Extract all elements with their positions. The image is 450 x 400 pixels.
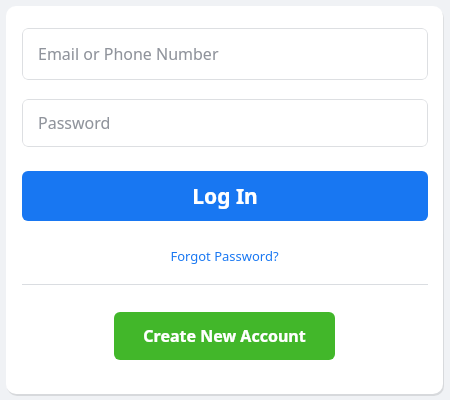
button[interactable]: Create New Account (114, 312, 335, 360)
button[interactable]: Forgot Password? (6, 240, 443, 272)
staticText: Email or Phone Number (38, 43, 219, 65)
button[interactable]: Log In (22, 171, 428, 221)
staticText: Log In (192, 182, 258, 211)
staticText: Password (38, 112, 111, 134)
staticText: Create New Account (143, 325, 306, 347)
button[interactable]: Password (22, 99, 428, 147)
staticText: Forgot Password? (170, 247, 279, 265)
button[interactable]: Email or Phone Number (22, 28, 428, 80)
